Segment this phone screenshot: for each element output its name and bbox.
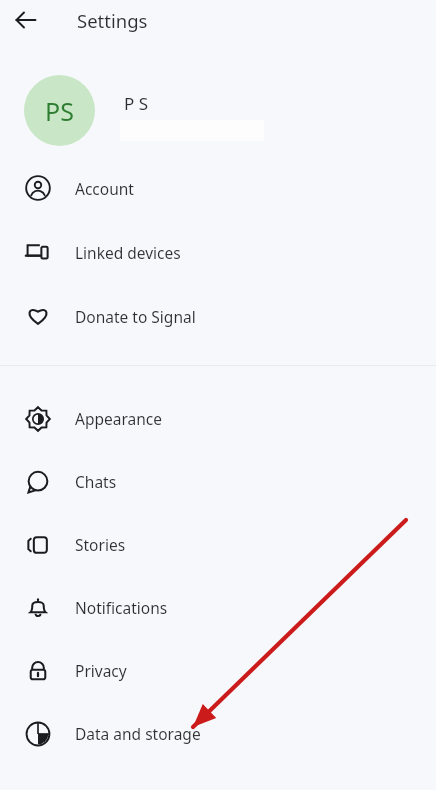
staticText: Account — [75, 178, 134, 199]
button[interactable]: Data and storage — [0, 702, 436, 765]
staticText: Data and storage — [75, 723, 201, 744]
staticText: Chats — [75, 471, 117, 492]
staticText: Notifications — [75, 597, 168, 618]
button[interactable]: Donate to Signal — [0, 284, 436, 348]
staticText: Linked devices — [75, 242, 181, 263]
button[interactable]: PS — [0, 42, 436, 146]
staticText: Stories — [75, 534, 126, 555]
button[interactable]: Chats — [0, 450, 436, 513]
button[interactable]: Appearance — [0, 387, 436, 450]
staticText: P S — [124, 92, 149, 115]
staticText: PS — [45, 94, 74, 128]
button[interactable]: Stories — [0, 513, 436, 576]
button[interactable]: Linked devices — [0, 220, 436, 284]
button[interactable]: Back — [8, 2, 44, 38]
button[interactable]: Privacy — [0, 639, 436, 702]
staticText: Settings — [77, 8, 148, 33]
button[interactable]: Account — [0, 156, 436, 220]
staticText: Appearance — [75, 408, 162, 429]
staticText: Donate to Signal — [75, 306, 196, 327]
button[interactable]: Notifications — [0, 576, 436, 639]
staticText: Privacy — [75, 660, 127, 681]
